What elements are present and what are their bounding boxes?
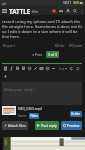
staticText: IMG_5363.mp4: [18, 106, 43, 111]
staticText: 3 of 3: [48, 52, 57, 57]
button[interactable]: Prev: [31, 51, 43, 58]
staticText: 18:11: [63, 1, 72, 5]
staticText: 94%: [73, 1, 80, 5]
button[interactable]: More formatting options: [2, 73, 8, 80]
button[interactable]: Insert link: [32, 65, 38, 72]
button[interactable]: Undo: [68, 65, 74, 72]
button[interactable]: Preview: [61, 121, 82, 130]
button[interactable]: Highlight colour: [20, 65, 26, 72]
button[interactable]: Video: [29, 113, 39, 119]
staticText: Preview: [67, 123, 80, 128]
staticText: Delete: [71, 112, 81, 116]
staticText: Attach files: [8, 123, 26, 128]
button[interactable]: Attachment preview: [2, 106, 16, 115]
button[interactable]: Quote: [69, 42, 83, 49]
button[interactable]: Bold: [2, 65, 8, 72]
button[interactable]: Search: [71, 6, 78, 15]
staticText: .life: [31, 9, 39, 15]
button[interactable]: More options: [78, 6, 85, 15]
button[interactable]: Italic: [8, 65, 14, 72]
button[interactable]: Emoji: [26, 65, 32, 72]
staticText: List: [59, 67, 65, 71]
staticText: Video: [30, 114, 38, 118]
button[interactable]: Post reply: [35, 121, 59, 130]
button[interactable]: Account: [64, 6, 71, 15]
button[interactable]: Insert table: [50, 65, 56, 72]
button[interactable]: 3 of 3: [46, 51, 59, 58]
button[interactable]: Like: [55, 42, 65, 49]
staticText: Report: [3, 43, 16, 48]
staticText: Write your reply...: [4, 87, 36, 92]
staticText: Quote: [72, 43, 83, 48]
button[interactable]: Insert image: [38, 65, 44, 72]
staticText: Insert:: [18, 114, 28, 118]
staticText: TATTLE: [9, 7, 31, 15]
staticText: Prev: [35, 52, 42, 57]
button[interactable]: Text colour: [14, 65, 20, 72]
button[interactable]: Open navigation menu: [0, 6, 9, 15]
button[interactable]: Notifications: [50, 6, 57, 15]
button[interactable]: Attach files: [2, 121, 28, 130]
button[interactable]: Inbox: [57, 6, 64, 15]
button[interactable]: Delete: [70, 111, 82, 117]
button[interactable]: Insert media: [44, 65, 50, 72]
staticText: Like: [58, 43, 65, 48]
button[interactable]: Redo: [74, 65, 80, 72]
button[interactable]: Report: [2, 42, 17, 49]
staticText: Post reply: [41, 123, 57, 128]
button[interactable]: List: [58, 67, 68, 71]
staticText: record using my iphone and I'll attach t…: [2, 19, 83, 39]
